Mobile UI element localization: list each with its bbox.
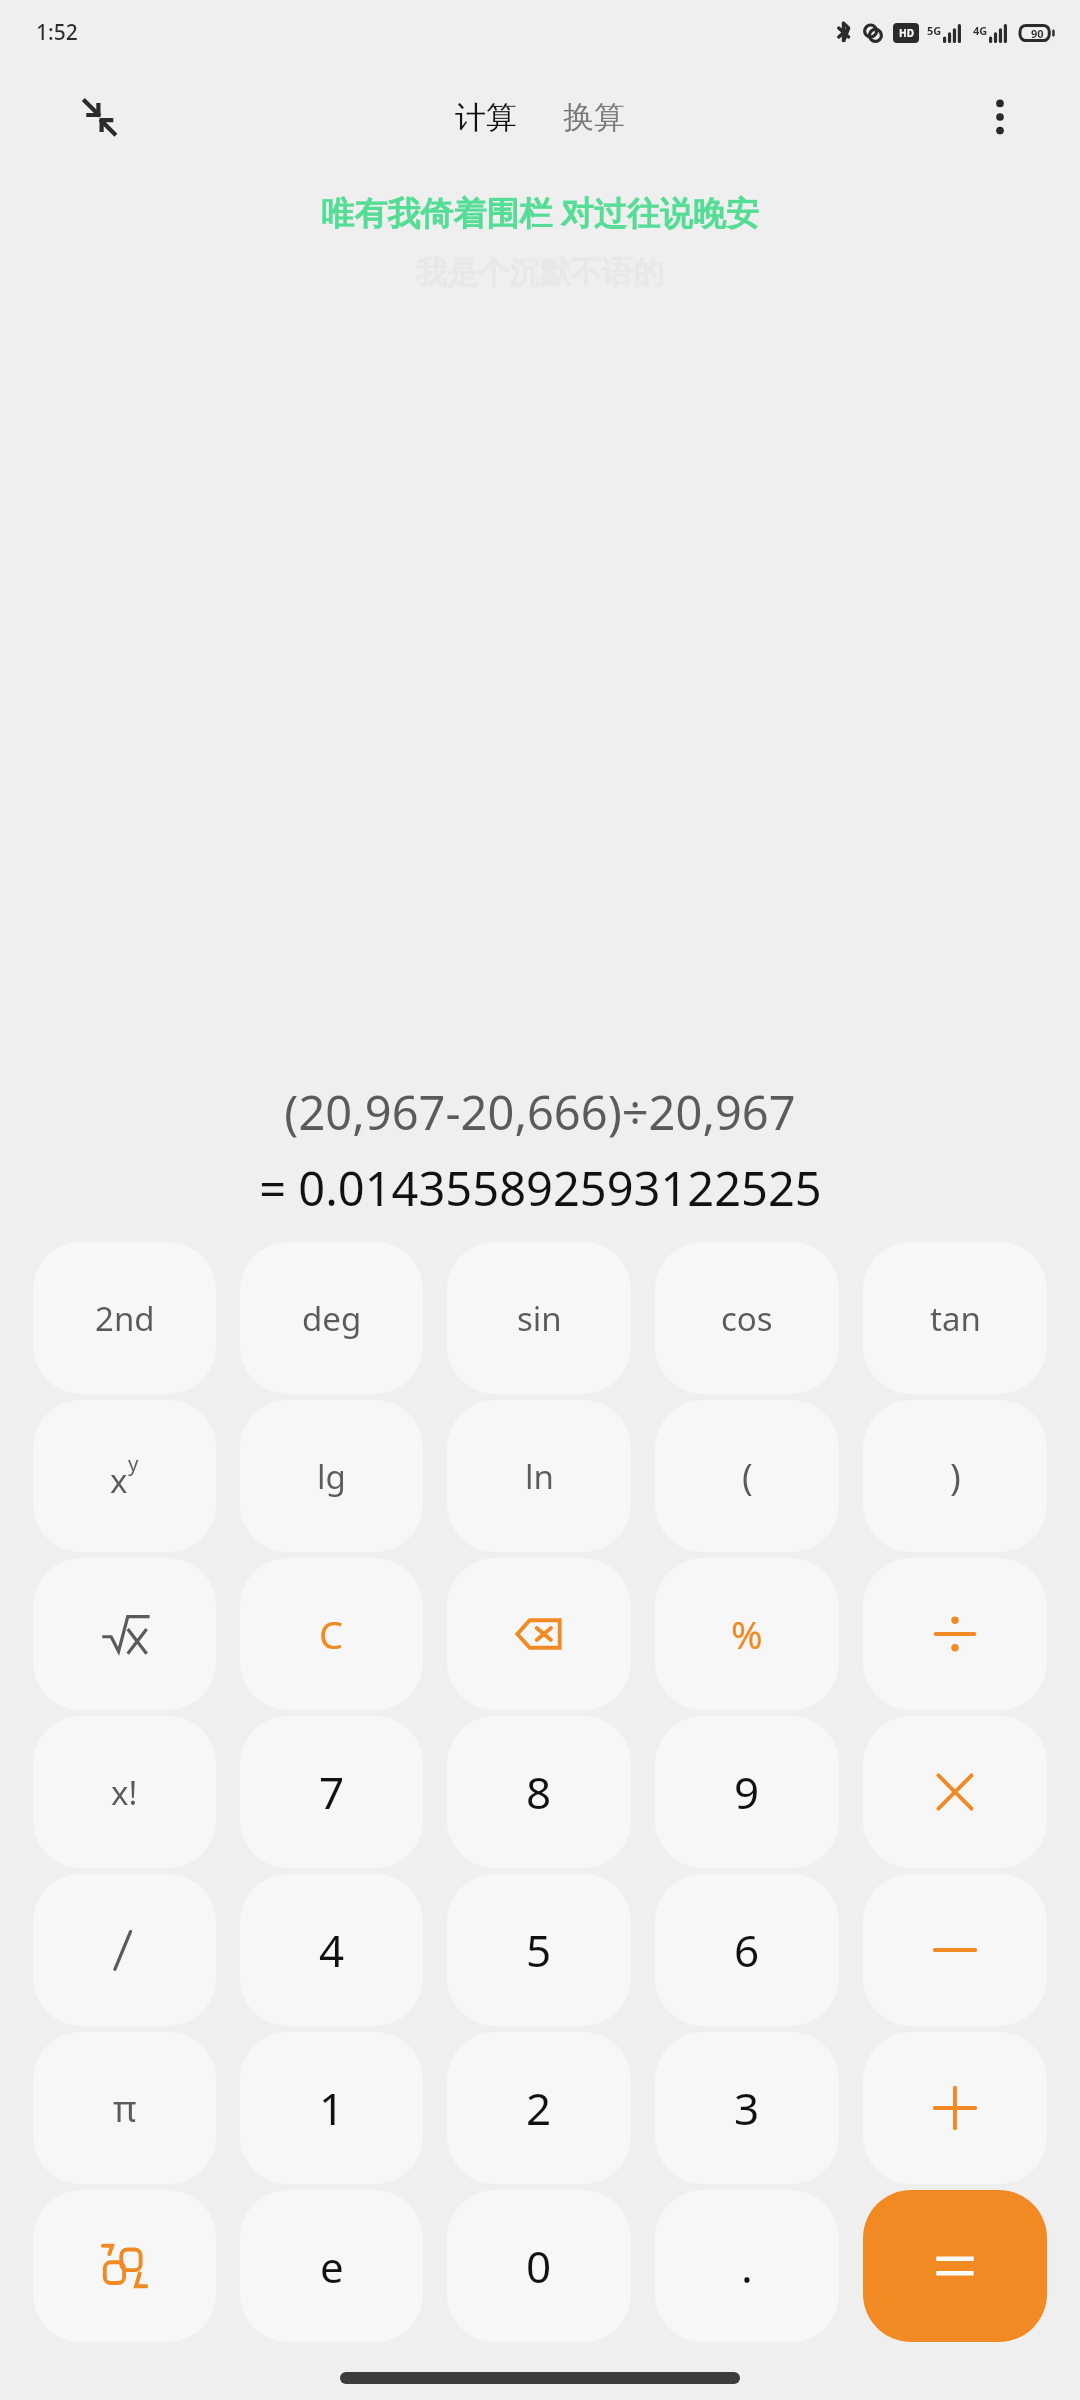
staticText: 2nd <box>95 1296 155 1341</box>
button[interactable]: 3 <box>655 2032 839 2184</box>
button[interactable]: C <box>240 1558 423 1710</box>
staticText: = 0.014355892593122525 <box>259 1156 822 1220</box>
button[interactable]: ln <box>447 1400 631 1552</box>
button[interactable]: ) <box>863 1400 1047 1552</box>
staticText: % <box>731 1608 763 1660</box>
staticText: ln <box>525 1454 554 1499</box>
staticText: 1 <box>319 2078 345 2138</box>
staticText: 7 <box>319 1762 345 1822</box>
staticText: e <box>320 2238 344 2295</box>
staticText: 换算 <box>563 98 625 137</box>
staticText: deg <box>302 1296 362 1341</box>
button[interactable]: deg <box>240 1242 423 1394</box>
button[interactable]: . <box>655 2190 839 2342</box>
staticText: π <box>113 2084 137 2133</box>
staticText: 9 <box>734 1762 760 1822</box>
button[interactable]: Multiply <box>863 1716 1047 1868</box>
staticText: tan <box>930 1296 981 1341</box>
button[interactable]: More options <box>972 89 1028 145</box>
button[interactable]: 0 <box>447 2190 631 2342</box>
staticText: cos <box>721 1296 773 1341</box>
button[interactable]: Minus <box>863 1874 1047 2026</box>
staticText: HD <box>899 26 914 40</box>
button[interactable]: 9 <box>655 1716 839 1868</box>
button[interactable]: 6 <box>655 1874 839 2026</box>
button[interactable]: 计算 <box>441 92 531 143</box>
button[interactable]: x! <box>33 1716 216 1868</box>
button[interactable]: Equals <box>863 2190 1047 2342</box>
staticText: 0 <box>526 2236 552 2296</box>
staticText: 6 <box>734 1920 760 1980</box>
staticText: x! <box>111 1770 138 1815</box>
button[interactable]: 1 <box>240 2032 423 2184</box>
button[interactable]: ( <box>655 1400 839 1552</box>
staticText: 8 <box>526 1762 552 1822</box>
button[interactable]: 换算 <box>549 92 639 143</box>
staticText: ) <box>950 1452 961 1501</box>
staticText: 90 <box>1031 26 1044 41</box>
button[interactable]: Reciprocal <box>33 1874 216 2026</box>
button[interactable]: Plus <box>863 2032 1047 2184</box>
button[interactable]: % <box>655 1558 839 1710</box>
staticText: ( <box>742 1452 753 1501</box>
staticText: 2 <box>526 2078 552 2138</box>
button[interactable]: lg <box>240 1400 423 1552</box>
staticText: . <box>741 2236 753 2296</box>
staticText: 5 <box>526 1920 552 1980</box>
staticText: 3 <box>734 2078 760 2138</box>
staticText: x <box>110 1458 128 1503</box>
button[interactable]: 2 <box>447 2032 631 2184</box>
staticText: 唯有我倚着围栏 对过往说晚安 <box>321 190 759 235</box>
staticText: (20,967-20,666)÷20,967 <box>284 1080 796 1144</box>
button[interactable]: x <box>33 1400 216 1552</box>
button[interactable]: 2nd <box>33 1242 216 1394</box>
staticText: 5G <box>927 23 942 38</box>
staticText: 4G <box>973 23 988 38</box>
staticText: 1:52 <box>36 18 78 47</box>
button[interactable]: Backspace <box>447 1558 631 1710</box>
button[interactable]: 8 <box>447 1716 631 1868</box>
button[interactable]: sin <box>447 1242 631 1394</box>
staticText: sin <box>517 1296 562 1341</box>
button[interactable]: Collapse <box>72 89 128 145</box>
button[interactable]: Square root <box>33 1558 216 1710</box>
button[interactable]: 7 <box>240 1716 423 1868</box>
button[interactable]: tan <box>863 1242 1047 1394</box>
staticText: 计算 <box>455 98 517 137</box>
staticText: 4 <box>319 1920 345 1980</box>
button[interactable]: 4 <box>240 1874 423 2026</box>
button[interactable]: e <box>240 2190 423 2342</box>
staticText: C <box>319 1608 344 1660</box>
staticText: y <box>128 1449 139 1477</box>
button[interactable]: Divide <box>863 1558 1047 1710</box>
staticText: 我是个沉默不语的 <box>416 253 664 292</box>
button[interactable]: 5 <box>447 1874 631 2026</box>
staticText: lg <box>317 1454 346 1499</box>
button[interactable]: cos <box>655 1242 839 1394</box>
button[interactable]: π <box>33 2032 216 2184</box>
button[interactable]: Random <box>33 2190 216 2342</box>
